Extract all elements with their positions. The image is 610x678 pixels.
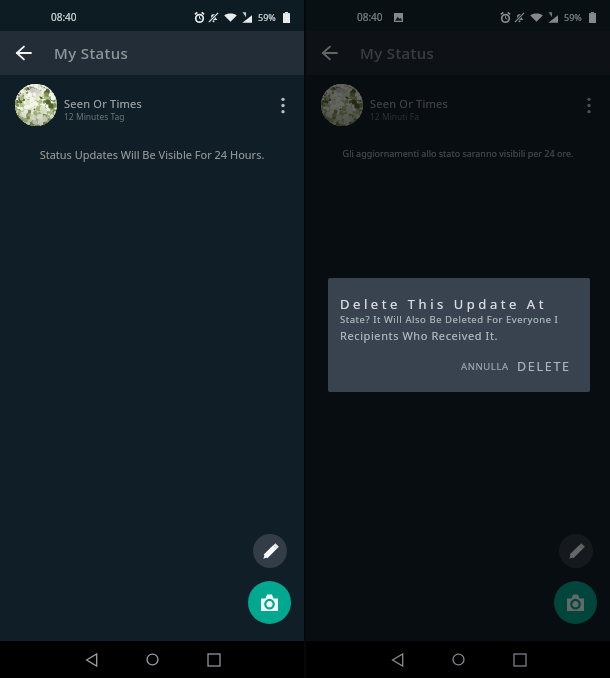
- button[interactable]: Recents: [501, 641, 538, 678]
- staticText: 08:40: [357, 10, 383, 24]
- button[interactable]: More options: [267, 89, 299, 121]
- button[interactable]: Back: [379, 641, 416, 678]
- staticText: DELETE: [517, 358, 571, 375]
- staticText: 59%: [564, 11, 582, 23]
- button[interactable]: Camera: [248, 581, 291, 624]
- button[interactable]: Back: [73, 641, 110, 678]
- staticText: 59%: [258, 11, 276, 23]
- staticText: Seen Or Times: [64, 96, 143, 111]
- staticText: ANNULLA: [461, 360, 509, 373]
- staticText: Seen Or Times: [370, 96, 449, 111]
- button[interactable]: Home: [440, 641, 477, 678]
- button[interactable]: More options: [573, 89, 605, 121]
- button[interactable]: Camera: [554, 581, 597, 624]
- button[interactable]: Seen Or Times: [0, 75, 304, 135]
- button[interactable]: Back: [0, 31, 47, 75]
- staticText: State? It Will Also Be Deleted For Every…: [340, 313, 559, 326]
- button[interactable]: Back: [306, 31, 353, 75]
- button[interactable]: Write status: [253, 534, 287, 568]
- staticText: 12 Minuti Fa: [370, 111, 419, 123]
- staticText: My Status: [360, 43, 435, 63]
- button[interactable]: ANNULLA: [459, 356, 511, 377]
- staticText: Recipients Who Received It.: [340, 328, 499, 343]
- button[interactable]: DELETE: [515, 354, 573, 379]
- staticText: 08:40: [51, 10, 77, 24]
- button[interactable]: Home: [134, 641, 171, 678]
- staticText: Status Updates Will Be Visible For 24 Ho…: [16, 147, 288, 162]
- button[interactable]: Recents: [195, 641, 232, 678]
- staticText: Gli aggiornamenti allo stato saranno vis…: [322, 147, 594, 159]
- button[interactable]: Seen Or Times: [306, 75, 610, 135]
- button[interactable]: Write status: [559, 534, 593, 568]
- staticText: 12 Minutes Tag: [64, 111, 125, 123]
- staticText: My Status: [54, 43, 129, 63]
- staticText: Delete This Update At: [340, 295, 547, 313]
